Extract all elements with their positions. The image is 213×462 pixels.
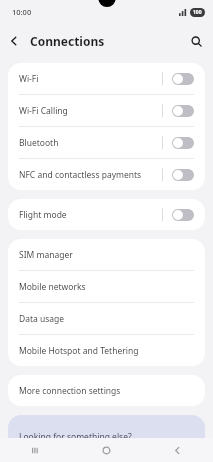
- staticText: 100: [193, 9, 202, 16]
- button[interactable]: Flight mode: [8, 199, 205, 230]
- button[interactable]: Toggle: [172, 137, 194, 149]
- button[interactable]: Looking for something else?: [8, 415, 205, 455]
- staticText: More connection settings: [19, 385, 121, 397]
- button[interactable]: Back: [0, 27, 28, 55]
- button[interactable]: Wi-Fi: [8, 63, 205, 94]
- button[interactable]: Mobile Hotspot and Tethering: [8, 335, 205, 366]
- staticText: Looking for something else?: [19, 431, 132, 443]
- button[interactable]: Home: [71, 438, 142, 462]
- button[interactable]: Toggle: [172, 105, 194, 117]
- staticText: Data usage: [19, 313, 65, 325]
- staticText: Mobile Hotspot and Tethering: [19, 345, 139, 357]
- staticText: Mobile networks: [19, 281, 86, 293]
- button[interactable]: Recent apps: [0, 438, 71, 462]
- staticText: Flight mode: [19, 209, 162, 221]
- button[interactable]: Wi-Fi Calling: [8, 95, 205, 126]
- staticText: NFC and contactless payments: [19, 169, 162, 181]
- staticText: Wi-Fi: [19, 73, 162, 85]
- button[interactable]: NFC and contactless payments: [8, 159, 205, 190]
- button[interactable]: Bluetooth: [8, 127, 205, 158]
- button[interactable]: SIM manager: [8, 239, 205, 270]
- staticText: Bluetooth: [19, 137, 162, 149]
- staticText: Connections: [30, 33, 105, 49]
- button[interactable]: Search: [181, 26, 211, 56]
- button[interactable]: Toggle: [172, 209, 194, 221]
- staticText: SIM manager: [19, 249, 73, 261]
- button[interactable]: Toggle: [172, 73, 194, 85]
- button[interactable]: More connection settings: [8, 375, 205, 406]
- button[interactable]: Toggle: [172, 169, 194, 181]
- staticText: Wi-Fi Calling: [19, 105, 162, 117]
- button[interactable]: Mobile networks: [8, 271, 205, 302]
- button[interactable]: Back: [142, 438, 213, 462]
- button[interactable]: Data usage: [8, 303, 205, 334]
- staticText: 10:00: [12, 7, 32, 17]
